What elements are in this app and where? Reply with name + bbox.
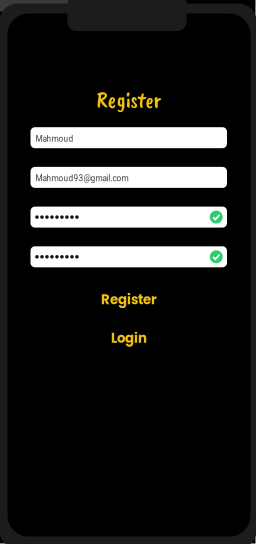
staticText: Register <box>101 290 157 309</box>
button[interactable] <box>30 246 227 267</box>
button[interactable]: Login <box>7 330 250 346</box>
staticText: Mahmoud93@gmail.com <box>36 174 129 183</box>
button[interactable] <box>30 207 227 228</box>
button[interactable]: Mahmoud <box>30 127 227 148</box>
staticText: Register <box>96 85 161 114</box>
staticText: Login <box>111 329 147 347</box>
button[interactable]: Register <box>7 291 250 307</box>
staticText: Mahmoud <box>36 134 74 144</box>
button[interactable]: Mahmoud93@gmail.com <box>30 167 227 188</box>
